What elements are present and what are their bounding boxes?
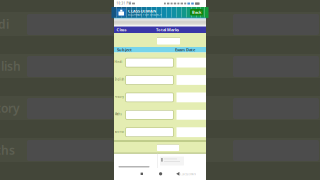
staticText: Subject [117, 47, 132, 52]
staticText: Exam Date [175, 47, 195, 52]
staticText: History [0, 100, 20, 116]
staticText: Class [116, 27, 126, 32]
staticText: Maths [115, 112, 122, 116]
staticText: Total Marks [156, 27, 179, 32]
button[interactable]: Back [190, 9, 203, 15]
staticText: CLASS DIWAN [128, 8, 156, 14]
staticText: Hindi [115, 60, 123, 64]
staticText: English [115, 78, 125, 81]
staticText: History [115, 95, 124, 98]
staticText: Hindi [0, 16, 9, 32]
staticText: 10:31 PM [116, 2, 130, 5]
staticText: Science [115, 130, 125, 133]
staticText: Maths [0, 142, 15, 158]
staticText: CLASSDIWAN [180, 172, 196, 176]
staticText: English [0, 58, 21, 74]
staticText: Back [192, 9, 201, 15]
staticText: BUDHWAR PETH BRANCH [128, 13, 162, 16]
